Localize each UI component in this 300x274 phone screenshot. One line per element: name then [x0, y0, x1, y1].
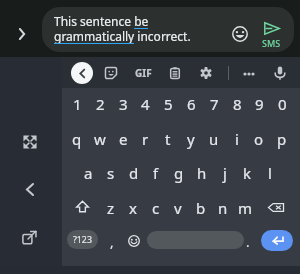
staticText: v — [174, 198, 182, 218]
button[interactable]: Emoji — [123, 230, 145, 252]
staticText: k — [243, 163, 252, 183]
button[interactable]: 3 — [111, 92, 135, 116]
button[interactable]: v — [166, 196, 190, 220]
staticText: l — [268, 163, 272, 183]
staticText: 5 — [164, 94, 173, 114]
button[interactable]: Space — [147, 231, 244, 249]
staticText: o — [254, 129, 264, 149]
button[interactable]: j — [213, 161, 237, 185]
button[interactable]: GIF — [129, 63, 157, 83]
button[interactable]: 5 — [156, 92, 180, 116]
button[interactable]: 2 — [88, 92, 112, 116]
button[interactable]: Send SMS — [257, 15, 291, 47]
button[interactable]: Voice input — [268, 61, 292, 85]
staticText: a — [84, 163, 93, 183]
staticText: 6 — [187, 94, 196, 114]
staticText: 1 — [73, 94, 82, 114]
staticText: m — [238, 198, 253, 218]
button[interactable]: u — [202, 127, 226, 151]
button[interactable]: 1 — [65, 92, 89, 116]
button[interactable]: More options — [237, 62, 261, 86]
button[interactable]: t — [156, 127, 180, 151]
button[interactable]: r — [133, 127, 157, 151]
staticText: 9 — [255, 94, 264, 114]
button[interactable]: g — [167, 161, 191, 185]
button[interactable]: b — [189, 196, 213, 220]
staticText: p — [277, 129, 287, 149]
staticText: i — [235, 129, 239, 149]
staticText: t — [165, 129, 171, 149]
button[interactable]: 9 — [247, 92, 271, 116]
staticText: 0 — [278, 94, 287, 114]
button[interactable]: z — [99, 196, 123, 220]
button[interactable]: 8 — [225, 92, 249, 116]
staticText: f — [153, 163, 159, 183]
staticText: GIF — [135, 66, 152, 80]
staticText: w — [94, 129, 106, 149]
button[interactable]: p — [270, 127, 294, 151]
staticText: u — [209, 129, 219, 149]
staticText: , — [110, 233, 114, 251]
staticText: q — [72, 129, 82, 149]
staticText: h — [197, 163, 207, 183]
staticText: j — [223, 163, 227, 183]
staticText: 8 — [233, 94, 242, 114]
staticText: c — [152, 198, 160, 218]
button[interactable]: . — [237, 231, 259, 253]
button[interactable]: a — [76, 161, 100, 185]
staticText: r — [142, 129, 149, 149]
button[interactable]: f — [144, 161, 168, 185]
button[interactable]: y — [179, 127, 203, 151]
button[interactable]: n — [211, 196, 235, 220]
button[interactable]: Emoji — [226, 20, 254, 48]
staticText: b — [196, 198, 206, 218]
button[interactable]: h — [190, 161, 214, 185]
button[interactable]: Settings — [194, 61, 218, 85]
staticText: e — [119, 129, 128, 149]
staticText: This sentence be grammatically incorrect… — [54, 13, 191, 45]
staticText: n — [218, 198, 228, 218]
button[interactable]: Backspace — [262, 193, 290, 221]
button[interactable]: , — [101, 231, 123, 253]
button[interactable]: Move keyboard left — [14, 173, 46, 205]
staticText: 2 — [96, 94, 105, 114]
staticText: y — [187, 129, 195, 149]
button[interactable]: ?123 — [67, 230, 98, 249]
button[interactable]: o — [247, 127, 271, 151]
staticText: z — [107, 198, 115, 218]
button[interactable]: More suggestions — [8, 20, 36, 48]
button[interactable]: l — [258, 161, 282, 185]
button[interactable]: k — [235, 161, 259, 185]
button[interactable]: e — [111, 127, 135, 151]
button[interactable]: d — [122, 161, 146, 185]
button[interactable]: 6 — [179, 92, 203, 116]
button[interactable]: Stickers — [99, 61, 123, 85]
button[interactable]: This sentence be grammatically incorrect… — [42, 7, 294, 52]
button[interactable]: m — [233, 196, 257, 220]
button[interactable]: Clipboard — [163, 61, 187, 85]
button[interactable]: Shift — [68, 192, 96, 220]
button[interactable]: i — [225, 127, 249, 151]
button[interactable]: x — [121, 196, 145, 220]
staticText: SMS — [262, 37, 281, 49]
staticText: g — [174, 163, 184, 183]
staticText: . — [246, 233, 250, 251]
staticText: d — [129, 163, 139, 183]
staticText: s — [107, 163, 115, 183]
button[interactable]: Floating keyboard — [13, 221, 45, 253]
button[interactable]: 4 — [133, 92, 157, 116]
button[interactable]: w — [88, 127, 112, 151]
button[interactable]: Back — [71, 62, 93, 84]
button[interactable]: 0 — [270, 92, 294, 116]
button[interactable]: Resize keyboard — [14, 126, 46, 158]
staticText: x — [129, 198, 137, 218]
staticText: ?123 — [73, 234, 92, 246]
button[interactable]: Enter — [261, 230, 293, 251]
staticText: 4 — [141, 94, 150, 114]
staticText: 3 — [119, 94, 128, 114]
button[interactable]: q — [65, 127, 89, 151]
staticText: 7 — [210, 94, 219, 114]
button[interactable]: 7 — [202, 92, 226, 116]
button[interactable]: c — [144, 196, 168, 220]
button[interactable]: s — [99, 161, 123, 185]
